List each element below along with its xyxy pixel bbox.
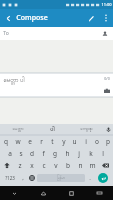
button[interactable]: Hide keyboard — [0, 186, 29, 200]
button[interactable]: q — [0, 135, 12, 147]
button[interactable]: To — [3, 30, 100, 37]
button[interactable]: Backspace — [98, 159, 113, 171]
button[interactable]: c — [38, 159, 50, 171]
staticText: k — [89, 149, 93, 158]
button[interactable]: Add recipient — [100, 29, 110, 39]
button[interactable]: . — [85, 171, 94, 185]
staticText: l — [102, 149, 104, 158]
staticText: x — [30, 161, 34, 170]
button[interactable]: Attach photo — [103, 87, 111, 95]
button[interactable]: n — [74, 159, 86, 171]
button[interactable]: Home — [29, 186, 57, 200]
staticText: r — [40, 137, 43, 146]
staticText: ?123 — [5, 175, 15, 181]
staticText: w — [15, 137, 21, 146]
button[interactable]: Change language — [27, 171, 37, 185]
button[interactable]: y — [58, 135, 69, 147]
staticText: z — [18, 161, 22, 170]
staticText: h — [65, 149, 70, 158]
button[interactable]: w — [12, 135, 24, 147]
staticText: မေတ္တာ ပါ — [3, 76, 25, 85]
button[interactable]: မေတ္တာ ပါ — [0, 73, 113, 97]
staticText: t — [51, 137, 54, 146]
button[interactable]: h — [61, 147, 73, 159]
button[interactable]: u — [69, 135, 80, 147]
button[interactable]: ပါ — [35, 124, 69, 135]
staticText: o — [95, 137, 99, 146]
staticText: c — [42, 161, 46, 170]
button[interactable]: k — [85, 147, 97, 159]
button[interactable]: Voice input — [103, 124, 113, 135]
staticText: 0/0 — [104, 76, 110, 81]
button[interactable]: o — [91, 135, 102, 147]
staticText: မြန်မာ — [57, 176, 65, 181]
staticText: e — [28, 137, 32, 146]
button[interactable]: j — [73, 147, 85, 159]
staticText: a — [8, 149, 12, 158]
staticText: u — [72, 137, 77, 146]
staticText: i — [85, 137, 87, 146]
button[interactable]: e — [24, 135, 36, 147]
button[interactable]: v — [50, 159, 62, 171]
button[interactable]: ?123 — [1, 171, 18, 185]
button[interactable]: b — [62, 159, 74, 171]
button[interactable]: x — [26, 159, 38, 171]
staticText: q — [4, 137, 8, 146]
staticText: To — [3, 30, 9, 37]
staticText: v — [54, 161, 58, 170]
button[interactable]: မေတ္တာ — [0, 124, 35, 135]
button[interactable]: ကျေးဇူး — [69, 124, 103, 135]
staticText: d — [30, 149, 34, 158]
staticText: p — [106, 137, 110, 146]
button[interactable]: p — [102, 135, 113, 147]
staticText: f — [42, 149, 45, 158]
staticText: n — [78, 161, 83, 170]
staticText: မေတ္တာ — [12, 126, 24, 133]
button[interactable]: More options — [99, 11, 113, 25]
staticText: . — [89, 174, 91, 182]
button[interactable]: f — [37, 147, 49, 159]
staticText: ပါ — [50, 125, 55, 135]
staticText: m — [89, 161, 96, 170]
button[interactable]: g — [49, 147, 61, 159]
staticText: ကျေးဇူး — [80, 126, 93, 133]
button[interactable]: Back — [0, 10, 16, 26]
button[interactable]: Edit — [83, 10, 99, 26]
button[interactable]: a — [4, 147, 15, 159]
button[interactable]: m — [86, 159, 98, 171]
button[interactable]: Recent apps — [57, 186, 85, 200]
staticText: j — [78, 149, 80, 158]
button[interactable]: Space — [37, 174, 85, 182]
staticText: g — [53, 149, 57, 158]
button[interactable]: Switch keyboard — [85, 186, 113, 200]
button[interactable]: d — [26, 147, 37, 159]
button[interactable]: s — [15, 147, 26, 159]
staticText: , — [22, 174, 24, 182]
staticText: Compose — [16, 13, 48, 23]
button[interactable]: Shift — [0, 159, 14, 171]
button[interactable]: r — [36, 135, 47, 147]
staticText: s — [19, 149, 23, 158]
staticText: 11:00 — [101, 2, 112, 7]
button[interactable]: z — [14, 159, 26, 171]
staticText: y — [62, 137, 66, 146]
button[interactable]: l — [97, 147, 109, 159]
button[interactable]: t — [47, 135, 58, 147]
button[interactable]: , — [18, 171, 27, 185]
button[interactable]: i — [80, 135, 91, 147]
button[interactable]: Enter — [94, 171, 112, 185]
staticText: b — [66, 161, 70, 170]
